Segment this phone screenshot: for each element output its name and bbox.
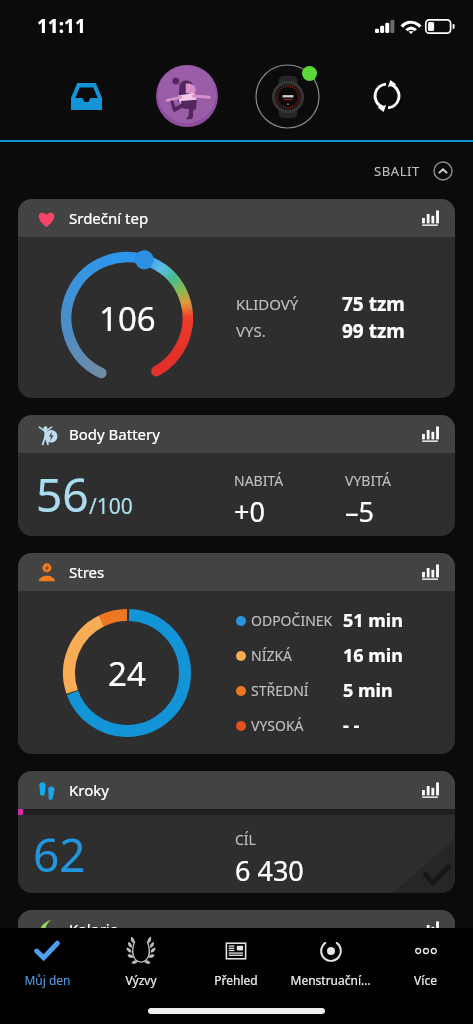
button[interactable]: SBALIT bbox=[374, 161, 453, 181]
staticText: Srdeční tep bbox=[69, 208, 149, 228]
button[interactable]: Přehled bbox=[188, 928, 283, 998]
staticText: VYS. bbox=[236, 321, 342, 341]
button[interactable]: Více bbox=[378, 928, 473, 998]
staticText: 56 bbox=[36, 463, 89, 526]
staticText: –5 bbox=[345, 493, 374, 530]
staticText: - - bbox=[343, 713, 360, 738]
staticText: Menstruační… bbox=[290, 972, 371, 988]
staticText: SBALIT bbox=[374, 162, 420, 180]
staticText: 106 bbox=[99, 296, 156, 341]
button[interactable]: Výzvy bbox=[94, 928, 188, 998]
staticText: KLIDOVÝ bbox=[236, 294, 342, 314]
button[interactable]: Srdeční tep bbox=[18, 199, 455, 398]
staticText: 5 min bbox=[343, 678, 393, 703]
staticText: 75 tzm bbox=[342, 291, 405, 317]
staticText: +0 bbox=[234, 493, 265, 530]
staticText: 99 tzm bbox=[342, 318, 405, 344]
staticText: /100 bbox=[89, 492, 133, 521]
staticText: ODPOČINEK bbox=[251, 611, 343, 630]
staticText: Body Battery bbox=[69, 424, 160, 444]
button[interactable]: Profile bbox=[137, 52, 237, 140]
staticText: Výzvy bbox=[125, 972, 157, 988]
staticText: 16 min bbox=[343, 643, 403, 668]
button[interactable]: Kroky bbox=[18, 771, 455, 893]
staticText: Přehled bbox=[214, 972, 258, 988]
staticText: Stres bbox=[69, 562, 105, 582]
staticText: 62 bbox=[33, 823, 235, 886]
staticText: 24 bbox=[108, 651, 146, 696]
button[interactable]: Menstruační… bbox=[283, 928, 378, 998]
staticText: CÍL bbox=[235, 830, 256, 849]
staticText: Kroky bbox=[69, 780, 109, 800]
button[interactable]: Sync bbox=[337, 52, 437, 140]
button[interactable]: Stres bbox=[18, 553, 455, 754]
staticText: VYSOKÁ bbox=[251, 716, 343, 735]
staticText: Můj den bbox=[24, 972, 71, 988]
staticText: NÍZKÁ bbox=[251, 646, 343, 665]
staticText: 51 min bbox=[343, 608, 403, 633]
staticText: Více bbox=[414, 972, 437, 988]
button[interactable]: Device bbox=[237, 52, 337, 140]
button[interactable]: Kalorie bbox=[18, 910, 455, 960]
button[interactable]: Můj den bbox=[0, 928, 94, 998]
staticText: NABITÁ bbox=[234, 471, 284, 490]
button[interactable]: Inbox bbox=[36, 52, 137, 140]
staticText: STŘEDNÍ bbox=[251, 681, 343, 700]
staticText: 6 430 bbox=[235, 852, 304, 889]
staticText: VYBITÁ bbox=[345, 471, 391, 490]
staticText: Kalorie bbox=[69, 919, 119, 939]
staticText: 11:11 bbox=[37, 13, 86, 39]
button[interactable]: Body Battery bbox=[18, 415, 455, 536]
